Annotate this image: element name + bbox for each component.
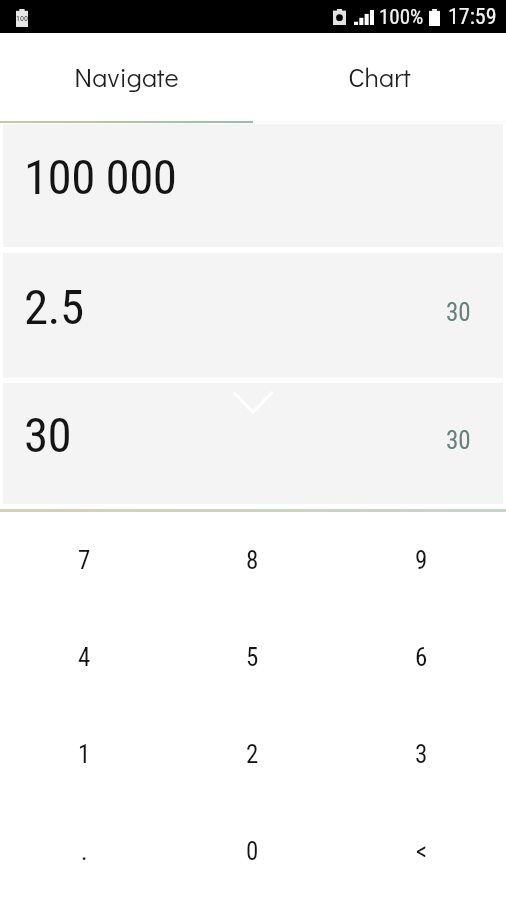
button[interactable]: Collapse panel <box>230 386 276 418</box>
staticText: 3 <box>415 740 428 769</box>
staticText: 4 <box>78 643 91 672</box>
button[interactable]: 3 <box>337 706 506 803</box>
staticText: 0 <box>246 837 259 866</box>
staticText: 17:59 <box>448 4 497 30</box>
staticText: . <box>81 837 88 866</box>
staticText: 7 <box>78 546 91 575</box>
staticText: 100 <box>16 14 28 23</box>
button[interactable]: 2 <box>168 706 337 803</box>
button[interactable]: 9 <box>337 512 506 609</box>
staticText: Chart <box>348 59 411 94</box>
button[interactable]: 4 <box>0 609 168 706</box>
staticText: 30 <box>446 426 471 455</box>
button[interactable]: Navigate <box>0 33 253 121</box>
button[interactable]: 2.5 <box>3 253 503 378</box>
button[interactable]: 8 <box>168 512 337 609</box>
button[interactable]: . <box>0 803 168 900</box>
staticText: 6 <box>415 643 428 672</box>
staticText: 30 <box>24 407 72 464</box>
staticText: 8 <box>246 546 259 575</box>
button[interactable]: 30 <box>3 383 503 504</box>
button[interactable]: 1 <box>0 706 168 803</box>
staticText: 30 <box>446 298 471 327</box>
button[interactable]: 5 <box>168 609 337 706</box>
button[interactable]: < <box>337 803 506 900</box>
staticText: < <box>416 837 428 866</box>
staticText: 100% <box>379 5 424 30</box>
staticText: 2.5 <box>24 279 84 336</box>
button[interactable]: Chart <box>253 33 506 121</box>
staticText: 100 000 <box>24 149 177 206</box>
button[interactable]: 100 000 <box>3 124 503 247</box>
staticText: 9 <box>415 546 428 575</box>
staticText: 5 <box>246 643 259 672</box>
button[interactable]: 0 <box>168 803 337 900</box>
staticText: 2 <box>246 740 259 769</box>
staticText: Navigate <box>74 59 179 94</box>
staticText: 1 <box>78 740 91 769</box>
button[interactable]: 6 <box>337 609 506 706</box>
button[interactable]: 7 <box>0 512 168 609</box>
